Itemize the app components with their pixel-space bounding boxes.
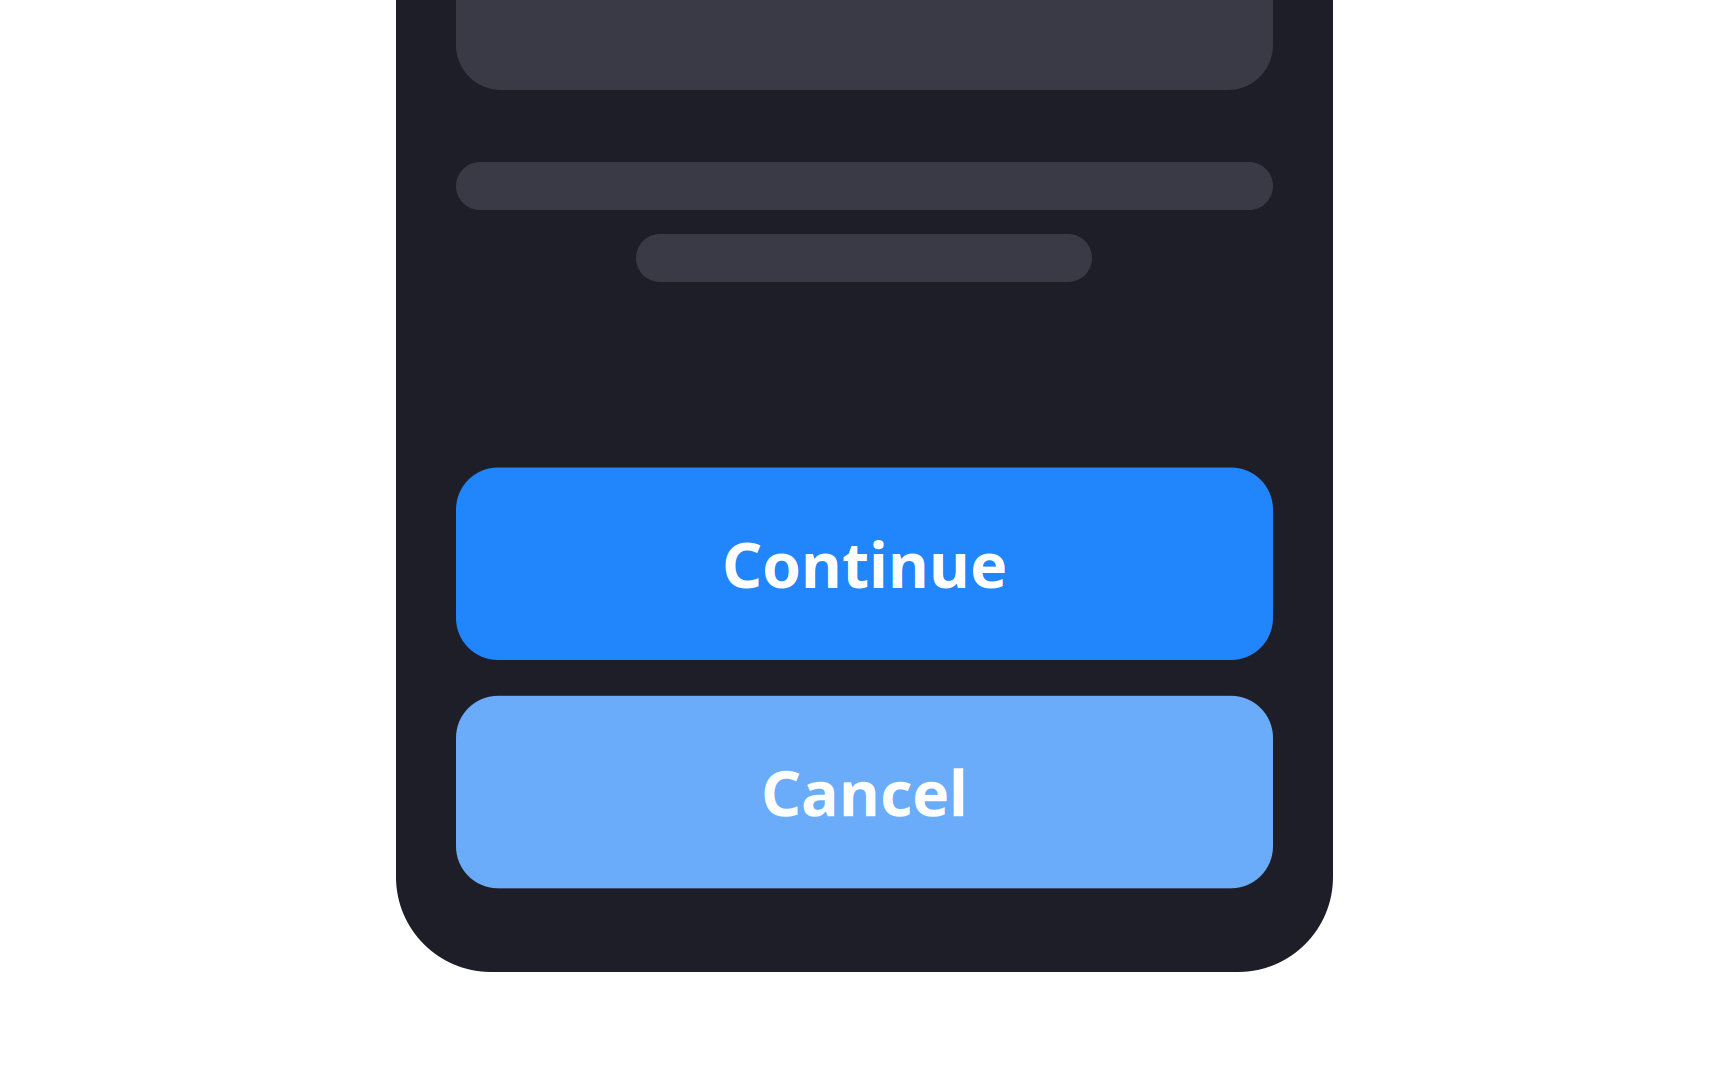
button[interactable]: Cancel	[456, 696, 1273, 888]
staticText: Continue	[722, 522, 1007, 605]
staticText: Cancel	[761, 750, 968, 834]
button[interactable]: Continue	[456, 467, 1273, 660]
